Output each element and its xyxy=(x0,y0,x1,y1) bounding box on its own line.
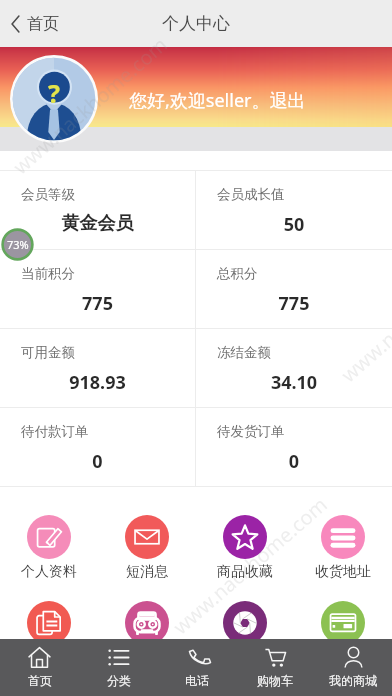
button[interactable]: 个人资料 xyxy=(0,515,98,581)
staticText: www.nackhome.com xyxy=(167,491,333,640)
staticText: 0 xyxy=(196,449,392,474)
staticText: 首页 xyxy=(28,673,52,688)
button[interactable]: 商品收藏 xyxy=(196,515,294,581)
staticText: 总积分 xyxy=(217,265,258,282)
button[interactable]: 会员等级 xyxy=(0,171,195,249)
button[interactable]: 会员成长值 xyxy=(196,171,392,249)
staticText: 34.10 xyxy=(196,370,392,395)
staticText: 电话 xyxy=(185,673,209,688)
button[interactable]: 冻结金额 xyxy=(196,329,392,407)
staticText: 个人中心 xyxy=(162,13,230,34)
staticText: ? xyxy=(48,76,60,110)
staticText: 会员等级 xyxy=(21,186,75,203)
staticText: 73% xyxy=(7,237,29,252)
staticText: 黄金会员 xyxy=(0,212,195,235)
button[interactable]: 会员卡 xyxy=(294,601,392,645)
button[interactable]: 购物车 xyxy=(236,639,314,696)
staticText: 0 xyxy=(0,449,195,474)
staticText: 待发货订单 xyxy=(217,423,285,440)
button[interactable]: 可用金额 xyxy=(0,329,195,407)
button[interactable]: 当前积分 xyxy=(0,250,195,328)
staticText: 购物车 xyxy=(257,673,293,688)
staticText: 待付款订单 xyxy=(21,423,89,440)
staticText: 首页 xyxy=(27,14,59,34)
button[interactable]: 分类 xyxy=(79,639,158,696)
staticText: 50 xyxy=(196,212,392,237)
button[interactable]: 物流 xyxy=(98,601,196,645)
button[interactable]: 总积分 xyxy=(196,250,392,328)
staticText: 商品收藏 xyxy=(217,563,273,581)
staticText: 918.93 xyxy=(0,370,195,395)
staticText: 我的商城 xyxy=(329,673,377,688)
button[interactable]: 短消息 xyxy=(98,515,196,581)
staticText: 您好,欢迎seller。退出 xyxy=(129,88,306,113)
staticText: www.nackhome.com xyxy=(335,239,392,388)
button[interactable]: 首页 xyxy=(0,639,79,696)
staticText: 短消息 xyxy=(126,563,168,581)
staticText: 775 xyxy=(0,291,195,316)
staticText: 个人资料 xyxy=(21,563,77,581)
staticText: 当前积分 xyxy=(21,265,75,282)
staticText: 冻结金额 xyxy=(217,344,271,361)
button[interactable]: 收货地址 xyxy=(294,515,392,581)
staticText: www.nackhome.com xyxy=(7,31,173,180)
button[interactable]: 相册 xyxy=(196,601,294,645)
staticText: 775 xyxy=(196,291,392,316)
button[interactable]: 待付款订单 xyxy=(0,408,195,486)
button[interactable]: 我的商城 xyxy=(314,639,392,696)
staticText: 会员成长值 xyxy=(217,186,285,203)
button[interactable]: 待发货订单 xyxy=(196,408,392,486)
button[interactable]: 首页 xyxy=(6,6,65,42)
staticText: 分类 xyxy=(107,673,131,688)
staticText: 收货地址 xyxy=(315,563,371,581)
button[interactable]: 电话 xyxy=(158,639,236,696)
staticText: 可用金额 xyxy=(21,344,75,361)
button[interactable]: 订单 xyxy=(0,601,98,645)
